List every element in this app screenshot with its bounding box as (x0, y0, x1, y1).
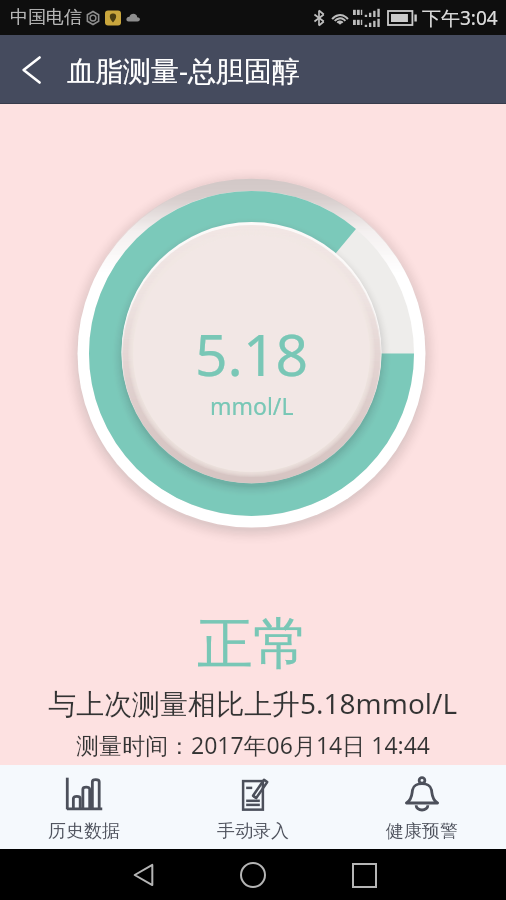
button[interactable]: Back (121, 853, 165, 897)
button[interactable]: Back (0, 38, 64, 102)
staticText: 健康预警 (386, 820, 458, 843)
staticText: 中国电信 (10, 6, 82, 29)
staticText: 手动录入 (217, 820, 289, 843)
other: History data (65, 777, 103, 811)
other: Health alerts (403, 777, 441, 811)
button[interactable]: Home (231, 853, 275, 897)
button[interactable]: Recents (342, 853, 386, 897)
staticText: 测量时间：2017年06月14日 14:44 (76, 729, 431, 760)
button[interactable]: Manual entry (168, 765, 337, 849)
staticText: 历史数据 (48, 820, 120, 843)
staticText: 正常 (197, 609, 309, 680)
staticText: 血脂测量-总胆固醇 (67, 51, 301, 89)
staticText: 5.18 (195, 315, 309, 393)
button[interactable]: Health alerts (337, 765, 506, 849)
staticText: 下午3:04 (422, 5, 498, 31)
other: Manual entry (234, 777, 272, 811)
staticText: 与上次测量相比上升5.18mmol/L (48, 684, 458, 722)
button[interactable]: History data (0, 765, 168, 849)
staticText: mmol/L (210, 390, 294, 421)
